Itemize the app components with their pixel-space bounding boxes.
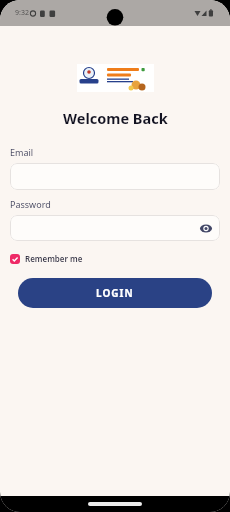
staticText: LOGIN [96,286,134,300]
button[interactable]: Remember me [10,253,83,264]
button[interactable] [10,163,220,190]
staticText: Welcome Back [63,108,168,128]
staticText: Remember me [25,253,83,264]
button[interactable]: LOGIN [18,278,212,308]
staticText: Email [10,146,34,158]
staticText: Password [10,198,51,210]
button[interactable] [10,215,220,241]
button[interactable] [199,221,213,235]
staticText: 9:32 [15,8,29,18]
